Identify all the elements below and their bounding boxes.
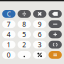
button[interactable]: Divide	[18, 10, 31, 18]
button[interactable]: Plus	[48, 30, 62, 38]
button[interactable]: 7	[2, 20, 15, 28]
button[interactable]: 8	[18, 20, 31, 28]
button[interactable]: 3	[33, 41, 46, 49]
button[interactable]: Multiply	[33, 10, 46, 18]
staticText: 7	[7, 20, 11, 29]
staticText: C	[7, 9, 11, 18]
button[interactable]: 9	[33, 20, 46, 28]
staticText: 0	[7, 50, 11, 59]
button[interactable]: Decimal point	[18, 51, 31, 59]
button[interactable]: 5	[18, 30, 31, 38]
staticText: 9	[38, 20, 42, 29]
button[interactable]: Minus	[48, 20, 62, 28]
button[interactable]: 4	[2, 30, 15, 38]
staticText: 1	[7, 40, 11, 49]
button[interactable]: 2	[18, 41, 31, 49]
button[interactable]: Equals	[48, 51, 62, 59]
staticText: 3	[38, 40, 42, 49]
button[interactable]: Delete	[48, 10, 62, 18]
staticText: 8	[22, 20, 26, 29]
staticText: 4	[7, 30, 11, 39]
button[interactable]: 0	[2, 51, 15, 59]
button[interactable]: 1	[2, 41, 15, 49]
staticText: 6	[38, 30, 42, 39]
button[interactable]: Parentheses	[48, 41, 62, 49]
button[interactable]: 6	[33, 30, 46, 38]
staticText: 5	[22, 30, 26, 39]
button[interactable]: Clear	[2, 10, 15, 18]
staticText: 2	[22, 40, 26, 49]
button[interactable]: Percent	[33, 51, 46, 59]
